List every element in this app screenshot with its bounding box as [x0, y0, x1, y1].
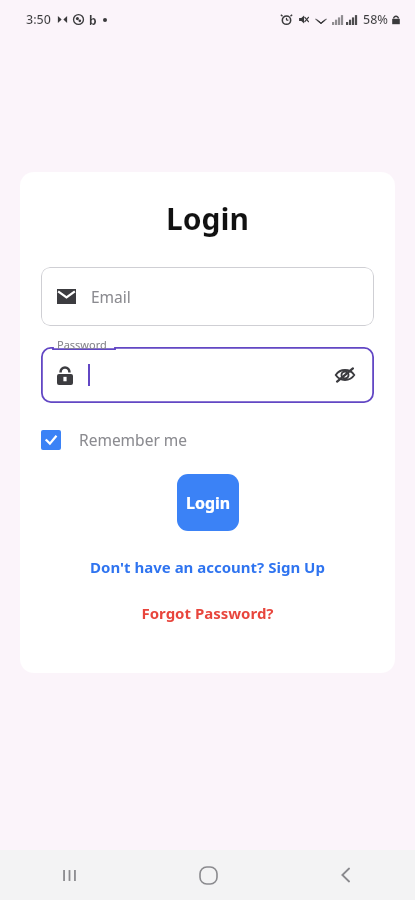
button[interactable]: Forgot Password?: [41, 599, 374, 627]
staticText: Password: [57, 337, 107, 352]
staticText: Forgot Password?: [141, 603, 274, 623]
staticText: Don't have an account? Sign Up: [90, 557, 325, 577]
staticText: 3:50: [26, 11, 51, 28]
staticText: Login: [186, 492, 231, 514]
button[interactable]: Back: [277, 850, 415, 900]
button[interactable]: Don't have an account? Sign Up: [41, 553, 374, 581]
button[interactable]: Home: [139, 850, 277, 900]
button[interactable]: Remember me: [41, 427, 188, 452]
staticText: b: [89, 12, 97, 28]
button[interactable]: Login: [177, 474, 239, 531]
staticText: 58%: [363, 11, 388, 28]
button[interactable]: Recent apps: [0, 850, 139, 900]
staticText: Email: [91, 286, 131, 307]
staticText: Remember me: [79, 429, 188, 450]
staticText: Login: [41, 198, 374, 239]
button[interactable]: Show password: [330, 360, 360, 390]
button[interactable]: Email: [41, 267, 374, 326]
button[interactable]: Show password: [41, 347, 374, 403]
